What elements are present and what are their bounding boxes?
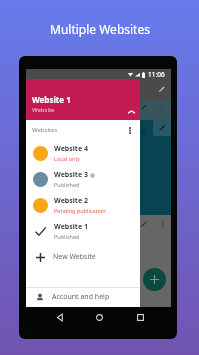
staticText: Local only bbox=[54, 155, 80, 162]
staticText: Website 4 bbox=[54, 144, 88, 154]
staticText: Pending publication bbox=[54, 207, 106, 214]
staticText: Websites bbox=[32, 126, 58, 134]
staticText: Website 1 bbox=[54, 222, 88, 232]
staticText: Website bbox=[32, 106, 55, 114]
staticText: 11:06 bbox=[148, 70, 165, 79]
staticText: Multiple Websites bbox=[50, 21, 150, 37]
staticText: Published bbox=[54, 233, 80, 240]
button[interactable]: Recents bbox=[137, 314, 144, 321]
staticText: Account and help bbox=[52, 292, 110, 302]
button[interactable]: Website 4 bbox=[26, 140, 140, 166]
staticText: Published bbox=[54, 181, 80, 188]
button[interactable]: More options bbox=[123, 123, 137, 137]
button[interactable]: Back bbox=[57, 314, 64, 321]
button[interactable]: Website 1 bbox=[26, 79, 140, 120]
other: Collapse bbox=[128, 110, 135, 114]
button[interactable]: Home bbox=[96, 314, 103, 321]
staticText: Website 2 bbox=[54, 196, 88, 206]
button[interactable]: New Website bbox=[26, 244, 140, 270]
button[interactable]: Website 2 bbox=[26, 192, 140, 218]
staticText: Website 3 bbox=[54, 170, 88, 180]
button[interactable]: Website 3 bbox=[26, 166, 140, 192]
staticText: New Website bbox=[53, 252, 96, 262]
staticText: Website 1 bbox=[32, 94, 71, 105]
button[interactable]: Website 1 bbox=[26, 218, 140, 244]
button[interactable]: Add bbox=[143, 268, 166, 291]
button[interactable]: Account and help bbox=[26, 288, 140, 306]
